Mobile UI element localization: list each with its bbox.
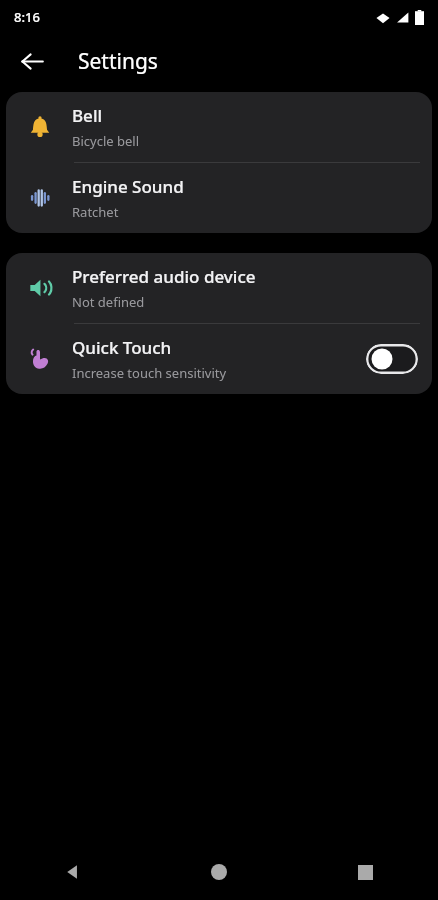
staticText: Preferred audio device — [72, 265, 256, 288]
staticText: Quick Touch — [72, 336, 172, 359]
button[interactable]: Bell — [6, 92, 432, 162]
button[interactable]: Recent apps — [292, 844, 438, 900]
button[interactable]: Engine Sound — [6, 163, 432, 233]
staticText: 8:16 — [14, 8, 40, 26]
button[interactable]: Preferred audio device — [6, 253, 432, 323]
staticText: Not defined — [72, 293, 145, 311]
staticText: Bell — [72, 104, 103, 127]
button[interactable]: Back — [0, 844, 146, 900]
staticText: Settings — [78, 47, 158, 76]
staticText: Ratchet — [72, 203, 119, 221]
button[interactable]: Quick Touch toggle — [366, 344, 418, 374]
button[interactable]: Back — [10, 39, 54, 83]
staticText: Engine Sound — [72, 175, 184, 198]
button[interactable]: Quick Touch — [6, 324, 432, 394]
staticText: Increase touch sensitivity — [72, 364, 227, 382]
button[interactable]: Home — [146, 844, 292, 900]
staticText: Bicycle bell — [72, 132, 140, 150]
